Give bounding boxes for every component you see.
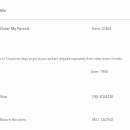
staticText: Me: [0, 8, 6, 13]
staticText: Item: 2/456: [92, 26, 112, 31]
staticText: Ship: [0, 94, 7, 99]
button[interactable]: Me: [0, 8, 6, 13]
staticText: Order My Parcels: [0, 26, 30, 31]
button[interactable]: Ship: [0, 94, 130, 99]
staticText: SKU: 1247641: [92, 117, 114, 122]
button[interactable]: Return this item: [0, 117, 130, 122]
staticText: Return this item: [0, 117, 26, 122]
staticText: s to 5 business days to get to you and a…: [0, 57, 123, 61]
staticText: Item: 1956: [91, 69, 109, 74]
staticText: ORJ: 4024438: [92, 94, 114, 99]
button[interactable]: Order My Parcels: [0, 26, 130, 31]
